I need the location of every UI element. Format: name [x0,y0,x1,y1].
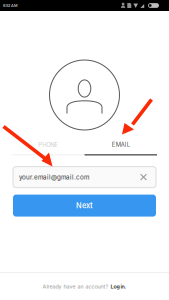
staticText: Already have an account? [42,283,108,290]
staticText: 6:52 AM [3,3,18,8]
button[interactable]: Clear text [137,169,150,186]
staticText: EMAIL [112,141,130,148]
staticText: Next [76,201,93,210]
staticText: your.email@gmail.com [19,173,89,181]
staticText: Log in. [110,283,126,290]
button[interactable]: PHONE [12,135,84,155]
button[interactable]: Next [0,195,169,217]
button[interactable]: Already have an account? [0,273,169,300]
staticText: PHONE [38,141,58,148]
button[interactable]: EMAIL [84,135,157,156]
